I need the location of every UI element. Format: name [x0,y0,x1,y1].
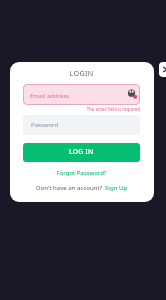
staticText: Don't have an account? [36,183,103,191]
button[interactable]: Password [23,115,140,135]
staticText: LOGIN [23,68,140,78]
button[interactable]: Sign Up [105,183,128,191]
button[interactable]: Email address [23,84,140,105]
staticText: LOG IN [69,147,94,156]
button[interactable]: Next [159,62,166,77]
button[interactable]: Forgot Password? [23,169,140,177]
staticText: The email field is required [23,106,140,112]
staticText: Password [31,121,59,129]
staticText: Email address [30,92,70,100]
button[interactable]: LOG IN [23,143,140,162]
